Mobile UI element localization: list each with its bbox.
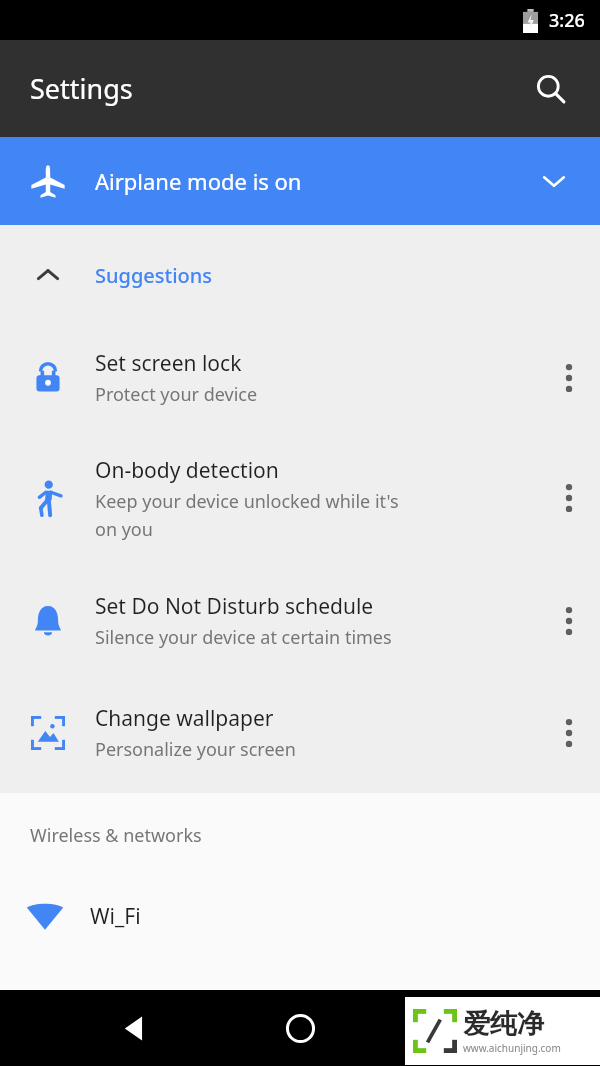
button[interactable]: Set Do Not Disturb schedule bbox=[0, 565, 600, 677]
staticText: 爱纯净 bbox=[463, 1007, 544, 1041]
staticText: Settings bbox=[30, 70, 133, 107]
staticText: Airplane mode is on bbox=[95, 166, 302, 196]
button[interactable]: More options bbox=[538, 565, 600, 677]
button[interactable]: Airplane mode is on bbox=[0, 137, 600, 225]
staticText: Keep your device unlocked while it's on … bbox=[95, 489, 399, 541]
button[interactable]: Back bbox=[105, 999, 163, 1057]
staticText: Wi_Fi bbox=[90, 902, 141, 931]
button[interactable]: More options bbox=[538, 431, 600, 565]
staticText: Suggestions bbox=[95, 262, 213, 289]
button[interactable]: Home bbox=[271, 999, 329, 1057]
staticText: www.aichunjing.com bbox=[463, 1041, 561, 1055]
button[interactable]: On-body detection bbox=[0, 431, 600, 565]
staticText: Set Do Not Disturb schedule bbox=[95, 592, 374, 621]
button[interactable]: Expand bbox=[530, 157, 578, 205]
button[interactable]: More options bbox=[538, 677, 600, 789]
staticText: Wireless & networks bbox=[30, 823, 202, 848]
button[interactable]: Set screen lock bbox=[0, 325, 600, 431]
staticText: Change wallpaper bbox=[95, 704, 274, 733]
staticText: 3:26 bbox=[549, 8, 585, 33]
staticText: Set screen lock bbox=[95, 349, 242, 378]
staticText: Protect your device bbox=[95, 382, 258, 407]
button[interactable]: Wi_Fi bbox=[0, 868, 600, 964]
staticText: On-body detection bbox=[95, 456, 279, 485]
button[interactable]: Suggestions bbox=[0, 225, 600, 325]
button[interactable]: More options bbox=[538, 325, 600, 431]
button[interactable]: Search bbox=[522, 60, 580, 118]
staticText: Silence your device at certain times bbox=[95, 625, 392, 650]
staticText: Personalize your screen bbox=[95, 737, 296, 762]
button[interactable]: Change wallpaper bbox=[0, 677, 600, 789]
